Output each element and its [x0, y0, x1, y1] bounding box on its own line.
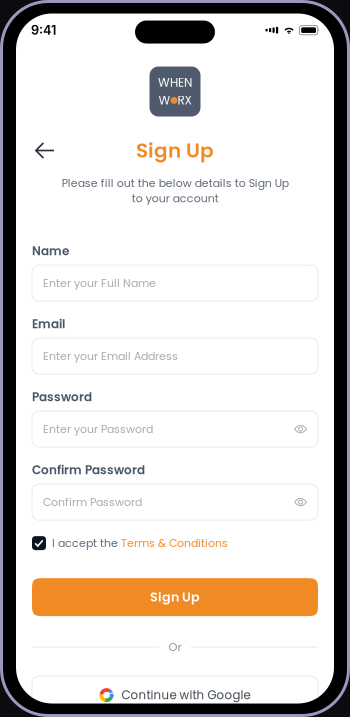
staticText: Continue with Google [121, 687, 250, 703]
button[interactable]: I accept the [32, 534, 318, 552]
button[interactable]: Continue with Google [32, 676, 318, 714]
staticText: W [158, 92, 170, 109]
staticText: Sign Up [150, 588, 200, 606]
staticText: Enter your Password [43, 421, 153, 437]
staticText: Confirm Password [43, 494, 142, 510]
staticText: WHEN [158, 74, 192, 91]
button[interactable]: Sign Up [32, 578, 318, 616]
staticText: Or [168, 639, 181, 655]
staticText: 9:41 [31, 22, 56, 38]
staticText: Enter your Email Address [43, 348, 178, 364]
button[interactable]: Back [30, 137, 60, 163]
staticText: Confirm Password [32, 462, 145, 478]
staticText: Sign Up [136, 136, 214, 164]
staticText: RX [177, 92, 191, 109]
staticText: Name [32, 243, 69, 259]
staticText: Password [32, 389, 92, 405]
staticText: I accept the [52, 535, 118, 551]
staticText: Enter your Full Name [43, 275, 156, 291]
staticText: Please fill out the below details to Sig… [61, 175, 288, 206]
staticText: Terms & Conditions [121, 535, 228, 551]
staticText: Email [32, 316, 65, 332]
